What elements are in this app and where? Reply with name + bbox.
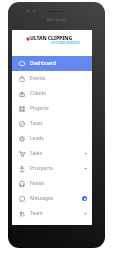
staticText: Projects xyxy=(30,105,49,112)
staticText: Tasks xyxy=(30,120,43,127)
button[interactable]: Prospects xyxy=(12,161,92,176)
button[interactable]: Leads xyxy=(12,131,92,146)
staticText: Messages xyxy=(30,195,54,202)
staticText: Team xyxy=(30,210,43,217)
button[interactable]: Tasks xyxy=(12,116,92,131)
button[interactable]: ULTAN CLIPPING xyxy=(12,30,92,56)
staticText: Dashboard xyxy=(30,60,56,67)
button[interactable]: Events xyxy=(12,71,92,86)
button[interactable]: Messages xyxy=(12,191,92,206)
staticText: Sales xyxy=(30,150,43,157)
staticText: Clients xyxy=(30,90,46,97)
staticText: Notes xyxy=(30,180,44,187)
staticText: ULTAN CLIPPING xyxy=(30,35,73,42)
button[interactable]: Dashboard xyxy=(12,56,92,71)
button[interactable]: Clients xyxy=(12,86,92,101)
staticText: Prospects xyxy=(30,165,53,172)
staticText: Events xyxy=(30,75,46,82)
staticText: Microsoft xyxy=(47,17,67,22)
staticText: CUTTING SERVICE xyxy=(51,41,80,45)
button[interactable]: Sales xyxy=(12,146,92,161)
button[interactable]: Notes xyxy=(12,176,92,191)
staticText: Leads xyxy=(30,135,44,142)
button[interactable]: Projects xyxy=(12,101,92,116)
button[interactable]: Team xyxy=(12,206,92,221)
